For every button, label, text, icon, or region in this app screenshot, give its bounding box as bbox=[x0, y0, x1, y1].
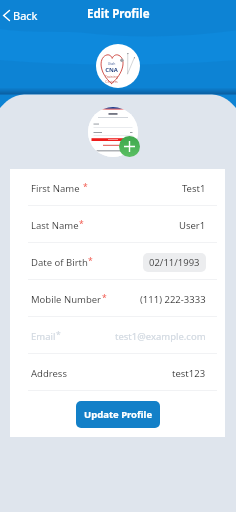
staticText: Last Name bbox=[31, 219, 79, 232]
button[interactable]: First Name bbox=[10, 169, 225, 205]
staticText: Edit Profile bbox=[87, 6, 150, 22]
staticText: * bbox=[102, 292, 107, 304]
staticText: * bbox=[79, 218, 84, 230]
staticText: (111) 222-3333 bbox=[140, 293, 206, 306]
staticText: * bbox=[56, 329, 61, 341]
staticText: Address bbox=[31, 367, 67, 380]
button[interactable]: Profile photo bbox=[88, 107, 138, 157]
staticText: Test1 bbox=[182, 182, 206, 195]
button[interactable]: Add photo bbox=[119, 136, 140, 157]
button[interactable]: Last Name bbox=[10, 206, 225, 242]
staticText: Email bbox=[31, 330, 56, 343]
staticText: Update Profile bbox=[84, 408, 153, 421]
staticText: Utah bbox=[102, 61, 121, 66]
button[interactable]: Mobile Number bbox=[10, 280, 225, 316]
staticText: Mobile Number bbox=[31, 293, 102, 306]
staticText: Back bbox=[13, 8, 38, 23]
staticText: Training bbox=[102, 74, 121, 79]
staticText: User1 bbox=[179, 219, 206, 232]
staticText: test1@example.com bbox=[115, 330, 206, 343]
staticText: First Name bbox=[31, 182, 83, 195]
staticText: CNA bbox=[102, 66, 121, 74]
button[interactable]: Date of Birth bbox=[10, 243, 225, 279]
staticText: * bbox=[83, 181, 88, 193]
staticText: Date of Birth bbox=[31, 256, 88, 269]
button[interactable]: Back bbox=[0, 0, 44, 29]
staticText: * bbox=[88, 255, 93, 267]
button[interactable]: Update Profile bbox=[76, 401, 160, 428]
button[interactable]: Address bbox=[10, 354, 225, 390]
staticText: 02/11/1993 bbox=[149, 256, 200, 269]
staticText: test123 bbox=[172, 367, 206, 380]
button[interactable]: Email bbox=[10, 317, 225, 353]
staticText: Centers bbox=[102, 79, 121, 84]
